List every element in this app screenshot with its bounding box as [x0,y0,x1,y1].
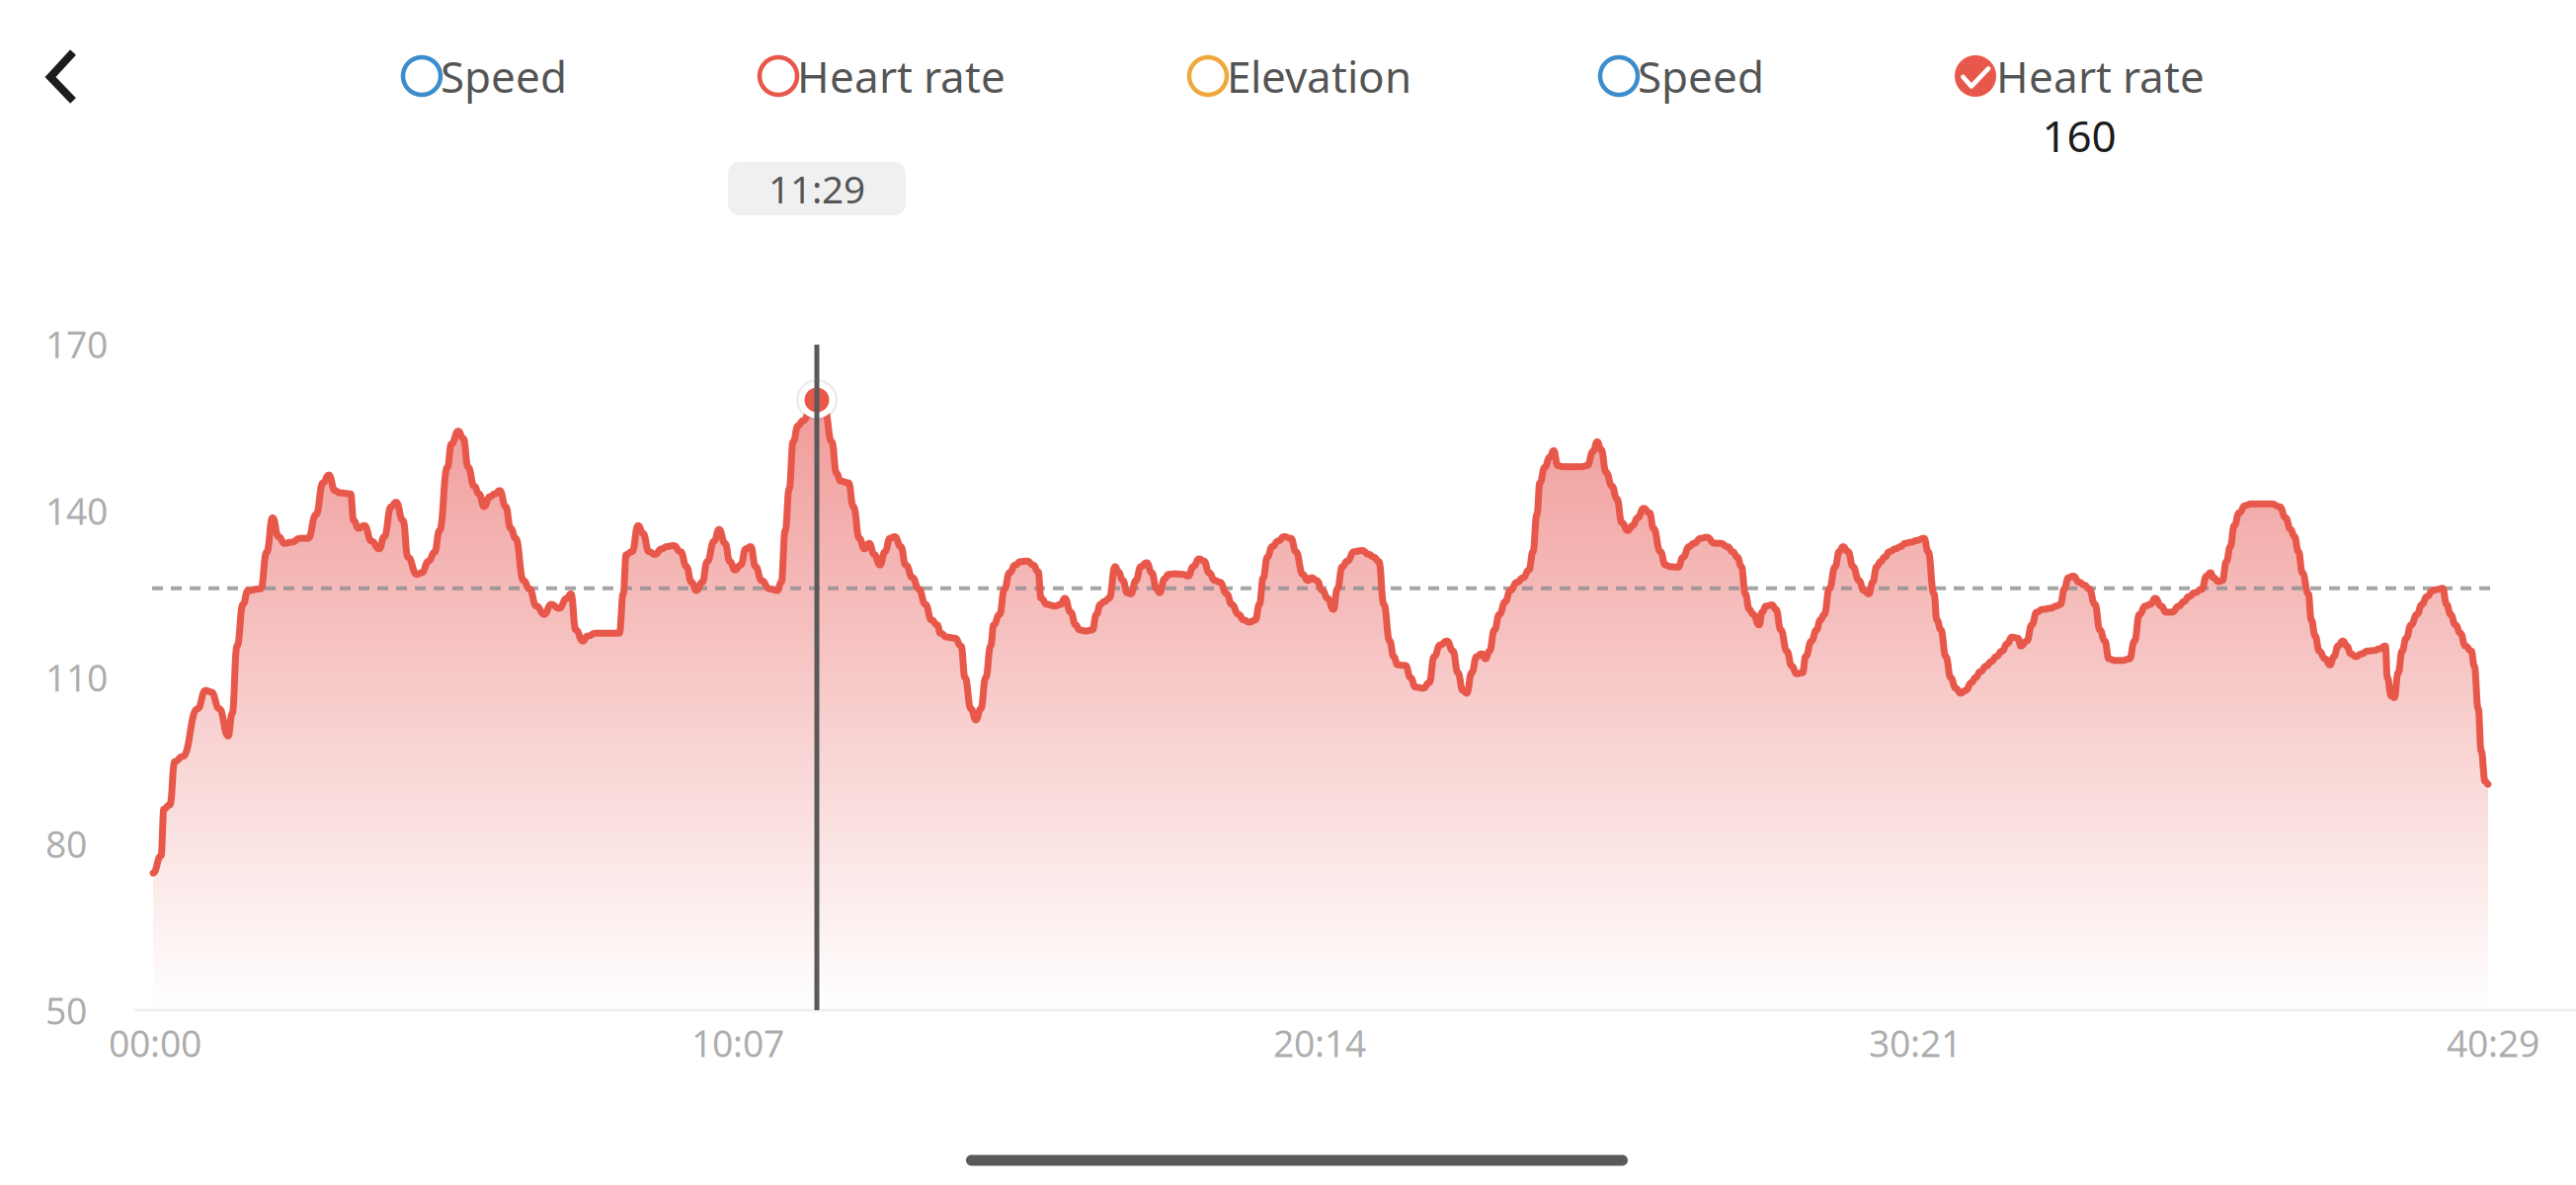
staticText: 160 [2042,106,2116,164]
staticText: 110 [45,653,108,702]
staticText: 80 [45,819,87,868]
staticText: 170 [45,320,108,369]
button[interactable]: Heart rate [1955,46,2350,165]
button[interactable]: Back [0,0,122,154]
button[interactable]: Heart rate [760,46,1155,106]
staticText: Heart rate [1996,47,2205,105]
staticText: Heart rate [797,47,1006,105]
button[interactable]: Elevation [1189,46,1584,106]
staticText: 140 [45,486,108,535]
staticText: 11:29 [768,163,865,214]
staticText: 30:21 [1869,1018,1962,1067]
button[interactable]: Speed [1600,46,1995,106]
staticText: 10:07 [691,1018,784,1067]
staticText: Elevation [1227,47,1411,105]
staticText: Speed [441,47,567,105]
staticText: Speed [1638,47,1764,105]
staticText: 00:00 [109,1018,201,1067]
button[interactable]: Speed [403,46,798,106]
staticText: 50 [45,986,87,1035]
staticText: 40:29 [2447,1018,2539,1067]
staticText: 20:14 [1273,1018,1366,1067]
